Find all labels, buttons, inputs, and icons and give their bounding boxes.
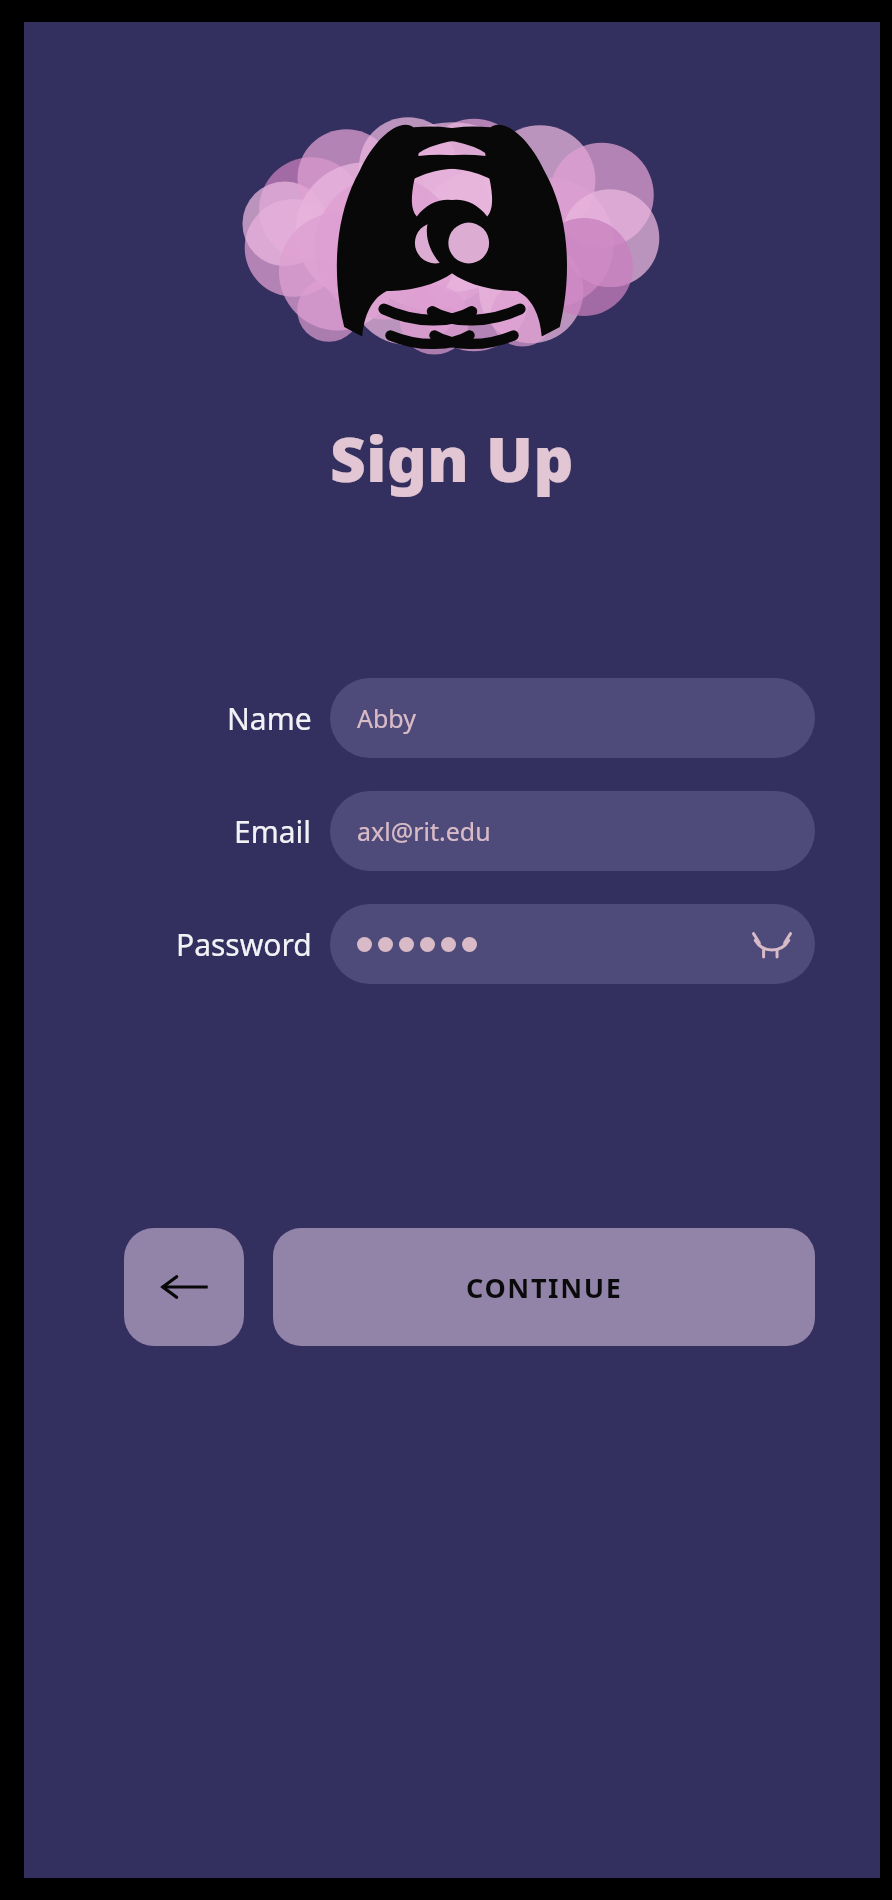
button[interactable]: Show password <box>330 904 815 984</box>
staticText: CONTINUE <box>466 1269 623 1306</box>
staticText: axl@rit.edu <box>357 814 491 848</box>
button[interactable]: axl@rit.edu <box>330 791 815 871</box>
staticText: Name <box>227 698 312 739</box>
staticText: Abby <box>357 701 416 735</box>
button[interactable]: Show password <box>745 917 799 971</box>
button[interactable]: Back <box>124 1228 244 1346</box>
staticText: Email <box>234 811 312 852</box>
button[interactable]: CONTINUE <box>273 1228 815 1346</box>
staticText: Sign Up <box>330 416 574 500</box>
button[interactable]: Abby <box>330 678 815 758</box>
staticText: Password <box>176 924 312 965</box>
